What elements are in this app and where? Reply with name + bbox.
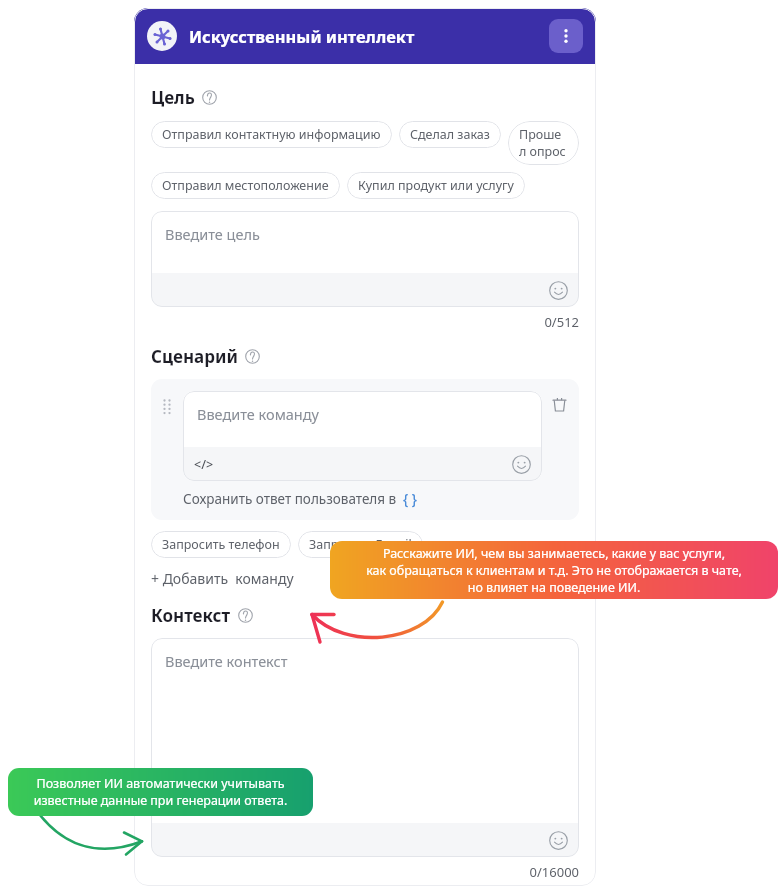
staticText: Позволяет ИИ автоматически учитывать изв… [18,775,303,809]
staticText: 0/512 [544,313,579,331]
button[interactable]: Введите команду [183,391,542,481]
button[interactable]: Позволяет ИИ автоматически учитывать изв… [8,768,313,816]
button[interactable]: Справка [238,608,253,623]
button[interactable]: Купил продукт или услугу [347,172,525,199]
button[interactable]: Эмодзи [549,831,568,850]
button[interactable]: Отправил местоположение [151,172,340,199]
staticText: Искусственный интеллект [189,25,415,47]
staticText: Введите контекст [165,651,288,671]
button[interactable]: Справка [245,349,260,364]
staticText: Запросить E-mail [309,536,412,553]
button[interactable]: Эмодзи [549,281,568,300]
staticText: Прошел опрос [519,126,568,160]
staticText: 0/16000 [529,863,579,881]
button[interactable]: Сохранить ответ пользователя в [183,490,417,508]
staticText: { } [403,490,417,508]
button[interactable]: Расскажите ИИ, чем вы занимаетесь, какие… [330,541,778,599]
staticText: Сценарий [151,345,238,368]
button[interactable]: Эмодзи [512,455,531,474]
button[interactable]: Меню [549,19,583,53]
staticText: Отправил местоположение [162,177,329,194]
staticText: Введите цель [165,224,260,244]
staticText: Контекст [151,604,231,627]
staticText: Отправил контактную информацию [162,126,381,143]
staticText: Запросить телефон [162,536,280,553]
button[interactable]: Запросить телефон [151,531,291,558]
staticText: Сделал заказ [410,126,490,143]
staticText: </> [194,456,214,473]
staticText: Введите команду [197,404,319,424]
staticText: Сохранить ответ пользователя в [183,490,397,508]
button[interactable]: Введите цель [151,211,579,307]
button[interactable]: Удалить [552,397,567,412]
button[interactable]: Код [194,456,214,473]
button[interactable]: Введите контекст [151,638,579,857]
button[interactable]: Запросить E-mail [298,531,423,558]
staticText: Расскажите ИИ, чем вы занимаетесь, какие… [340,545,768,596]
button[interactable]: + Добавить команду [151,569,294,588]
button[interactable]: Прошел опрос [508,121,579,165]
button[interactable]: Справка [202,90,217,105]
button[interactable]: Отправил контактную информацию [151,121,392,148]
button[interactable]: Сделал заказ [399,121,501,148]
staticText: + Добавить команду [151,569,294,588]
staticText: Купил продукт или услугу [358,177,514,194]
button[interactable]: Переместить [163,399,173,413]
staticText: Цель [151,86,195,109]
